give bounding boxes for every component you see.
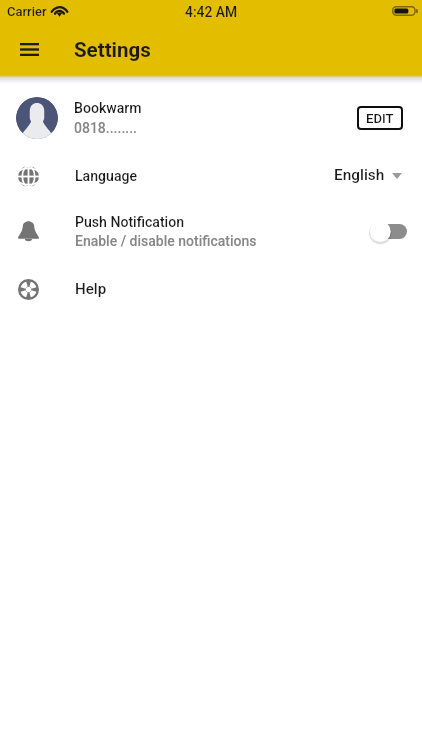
- staticText: Bookwarm: [74, 100, 142, 117]
- button[interactable]: Toggle push notifications: [375, 224, 407, 239]
- button[interactable]: Help: [0, 266, 422, 312]
- button[interactable]: Push Notification: [0, 203, 422, 259]
- button[interactable]: Menu: [9, 29, 49, 69]
- staticText: Carrier: [7, 4, 47, 19]
- staticText: English: [334, 166, 385, 184]
- staticText: Help: [75, 280, 406, 298]
- staticText: Settings: [74, 38, 151, 62]
- staticText: EDIT: [366, 111, 394, 126]
- staticText: Push Notification: [75, 214, 185, 231]
- staticText: Language: [75, 168, 334, 185]
- staticText: 4:42 AM: [185, 4, 238, 20]
- button[interactable]: Language: [0, 153, 422, 199]
- button[interactable]: Bookwarm: [0, 89, 422, 147]
- button[interactable]: EDIT: [357, 106, 403, 130]
- staticText: Enable / disable notifications: [75, 233, 257, 249]
- staticText: 0818........: [74, 120, 137, 136]
